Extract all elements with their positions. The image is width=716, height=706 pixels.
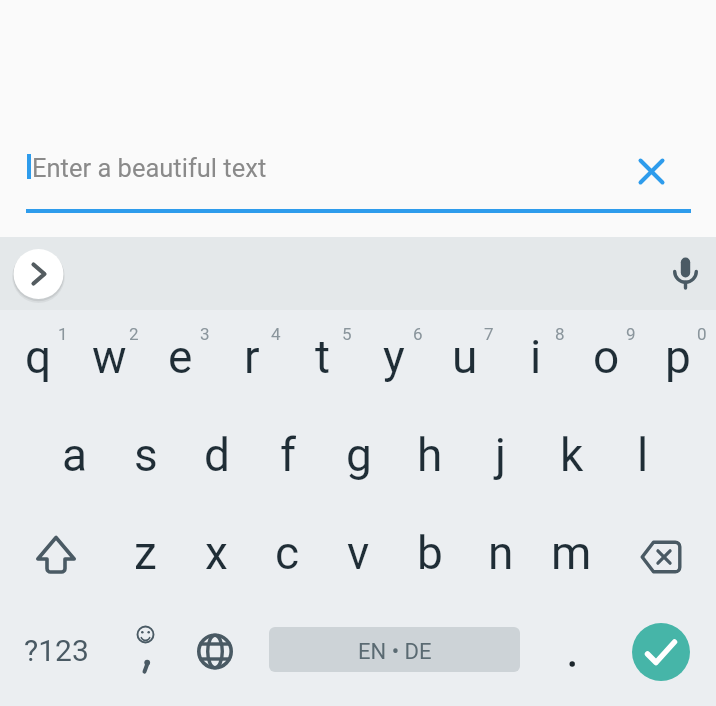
staticText: j bbox=[495, 428, 507, 482]
button[interactable] bbox=[14, 249, 64, 299]
staticText: 8 bbox=[555, 324, 565, 344]
staticText: g bbox=[346, 428, 372, 482]
button[interactable]: z bbox=[110, 506, 181, 604]
staticText: 0 bbox=[697, 324, 707, 344]
staticText: m bbox=[551, 526, 592, 580]
staticText: 2 bbox=[129, 324, 139, 344]
button[interactable]: j bbox=[465, 408, 536, 506]
button[interactable]: i bbox=[500, 310, 571, 408]
staticText: t bbox=[315, 330, 331, 384]
staticText: u bbox=[452, 330, 478, 384]
staticText: o bbox=[593, 330, 620, 384]
staticText: l bbox=[637, 428, 649, 482]
button[interactable]: e bbox=[145, 310, 216, 408]
staticText: k bbox=[560, 428, 584, 482]
staticText: y bbox=[383, 330, 405, 384]
staticText: r bbox=[244, 330, 260, 384]
staticText: v bbox=[347, 526, 370, 580]
staticText: 1 bbox=[58, 324, 68, 344]
staticText: ?123 bbox=[24, 633, 89, 668]
button[interactable]: d bbox=[181, 408, 252, 506]
staticText: q bbox=[25, 330, 52, 384]
staticText: c bbox=[275, 526, 300, 580]
button[interactable]: l bbox=[607, 408, 678, 506]
staticText: a bbox=[62, 428, 88, 482]
button[interactable]: g bbox=[323, 408, 394, 506]
button[interactable]: k bbox=[536, 408, 607, 506]
staticText: 9 bbox=[626, 324, 636, 344]
staticText: 6 bbox=[413, 324, 423, 344]
button[interactable] bbox=[4, 506, 108, 604]
button[interactable]: h bbox=[394, 408, 465, 506]
button[interactable]: EN • DE bbox=[269, 627, 520, 672]
staticText: 3 bbox=[200, 324, 210, 344]
button[interactable]: w bbox=[74, 310, 145, 408]
staticText: z bbox=[134, 526, 157, 580]
button[interactable]: p bbox=[642, 310, 713, 408]
staticText: e bbox=[168, 330, 193, 384]
staticText: d bbox=[204, 428, 230, 482]
button[interactable] bbox=[632, 623, 690, 681]
staticText: p bbox=[665, 330, 691, 384]
staticText: 7 bbox=[484, 324, 494, 344]
staticText: EN • DE bbox=[358, 639, 432, 665]
button[interactable]: Enter a beautiful text bbox=[0, 120, 716, 237]
button[interactable]: q bbox=[3, 310, 74, 408]
staticText: x bbox=[205, 526, 228, 580]
button[interactable]: a bbox=[39, 408, 110, 506]
button[interactable]: f bbox=[252, 408, 323, 506]
button[interactable] bbox=[663, 250, 708, 295]
button[interactable] bbox=[536, 604, 608, 702]
button[interactable]: b bbox=[394, 506, 465, 604]
staticText: 4 bbox=[271, 324, 281, 344]
staticText: n bbox=[488, 526, 514, 580]
button[interactable] bbox=[628, 148, 674, 194]
staticText: f bbox=[280, 428, 296, 482]
staticText: s bbox=[134, 428, 158, 482]
button[interactable]: o bbox=[571, 310, 642, 408]
button[interactable] bbox=[609, 506, 713, 604]
button[interactable]: y bbox=[358, 310, 429, 408]
button[interactable]: t bbox=[287, 310, 358, 408]
button[interactable]: u bbox=[429, 310, 500, 408]
button[interactable]: r bbox=[216, 310, 287, 408]
button[interactable]: s bbox=[110, 408, 181, 506]
button[interactable] bbox=[179, 604, 251, 702]
button[interactable]: m bbox=[536, 506, 607, 604]
staticText: Enter a beautiful text bbox=[32, 153, 267, 183]
staticText: 5 bbox=[342, 324, 352, 344]
button[interactable]: x bbox=[181, 506, 252, 604]
staticText: w bbox=[92, 330, 127, 384]
button[interactable] bbox=[110, 604, 182, 702]
staticText: h bbox=[417, 428, 443, 482]
staticText: i bbox=[530, 330, 542, 384]
button[interactable]: c bbox=[252, 506, 323, 604]
staticText: b bbox=[417, 526, 443, 580]
button[interactable]: v bbox=[323, 506, 394, 604]
button[interactable]: ?123 bbox=[6, 604, 106, 702]
button[interactable]: n bbox=[465, 506, 536, 604]
